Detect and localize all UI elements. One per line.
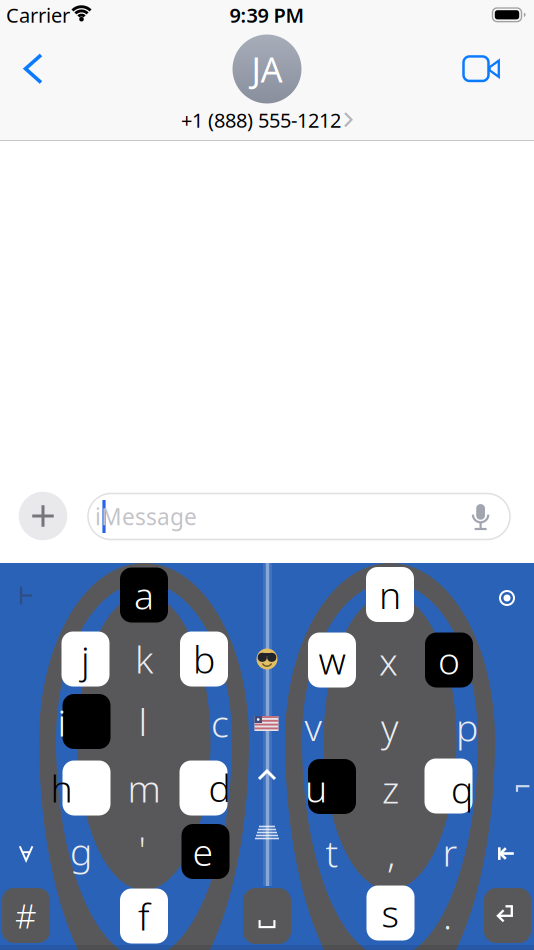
button[interactable]: l xyxy=(119,694,167,749)
staticText: i xyxy=(57,697,66,747)
staticText: . xyxy=(443,890,452,940)
button[interactable] xyxy=(243,888,291,944)
staticText: JA xyxy=(251,46,282,92)
button[interactable] xyxy=(88,493,510,539)
staticText: w xyxy=(318,635,345,685)
button[interactable]: . xyxy=(423,887,471,942)
staticText: iMessage xyxy=(95,501,197,531)
button[interactable] xyxy=(0,0,534,950)
staticText: u xyxy=(305,763,327,813)
button[interactable] xyxy=(0,0,534,950)
button[interactable]: c xyxy=(196,695,244,750)
button[interactable]: g xyxy=(57,823,105,878)
button[interactable]: h xyxy=(62,760,110,815)
button[interactable]: s xyxy=(366,885,414,940)
button[interactable]: q xyxy=(424,758,472,813)
staticText: g xyxy=(70,826,92,876)
button[interactable] xyxy=(0,0,534,950)
button[interactable]: b xyxy=(180,631,228,686)
button[interactable] xyxy=(255,768,279,782)
button[interactable] xyxy=(19,492,67,540)
button[interactable]: d xyxy=(179,760,227,815)
button[interactable] xyxy=(0,0,534,950)
button[interactable]: v xyxy=(289,699,337,754)
staticText: c xyxy=(211,698,229,748)
staticText: z xyxy=(382,764,399,814)
staticText: y xyxy=(381,702,399,752)
staticText: s xyxy=(381,888,399,938)
staticText: f xyxy=(138,891,150,941)
button[interactable] xyxy=(0,0,534,950)
button[interactable]: n xyxy=(366,567,414,622)
button[interactable]: x xyxy=(364,633,412,688)
button[interactable]: m xyxy=(120,760,168,815)
staticText: e xyxy=(192,827,213,876)
button[interactable] xyxy=(0,0,534,950)
staticText: h xyxy=(50,763,72,813)
staticText: k xyxy=(135,634,153,684)
staticText: ' xyxy=(138,824,145,874)
button[interactable]: z xyxy=(366,761,414,816)
staticText: v xyxy=(304,702,322,751)
button[interactable] xyxy=(0,0,534,950)
staticText: n xyxy=(379,570,401,619)
button[interactable]: p xyxy=(443,699,491,754)
button[interactable]: j xyxy=(61,631,109,686)
button[interactable]: f xyxy=(120,888,168,943)
button[interactable]: # xyxy=(2,888,50,943)
staticText: o xyxy=(438,635,460,685)
staticText: q xyxy=(451,764,473,814)
staticText: a xyxy=(134,570,154,620)
staticText: 9:39 PM xyxy=(229,2,304,28)
button[interactable]: o xyxy=(425,632,473,687)
staticText: # xyxy=(15,893,37,938)
staticText: x xyxy=(379,636,398,686)
button[interactable]: t xyxy=(308,825,356,880)
button[interactable]: k xyxy=(120,631,168,686)
staticText: d xyxy=(208,763,230,812)
staticText: , xyxy=(387,828,395,878)
button[interactable]: w xyxy=(308,632,356,687)
button[interactable] xyxy=(255,647,279,671)
staticText: r xyxy=(442,827,457,877)
button[interactable]: ' xyxy=(118,821,166,876)
button[interactable]: , xyxy=(367,825,415,880)
button[interactable]: u xyxy=(308,759,356,814)
staticText: j xyxy=(81,634,90,684)
staticText: p xyxy=(456,702,478,752)
staticText: Carrier xyxy=(6,2,70,28)
button[interactable] xyxy=(0,0,534,950)
button[interactable]: e xyxy=(181,824,229,879)
button[interactable] xyxy=(254,824,280,841)
button[interactable]: a xyxy=(120,567,168,622)
button[interactable] xyxy=(498,589,516,607)
staticText: t xyxy=(325,828,338,878)
button[interactable] xyxy=(254,715,278,731)
staticText: m xyxy=(127,763,160,813)
button[interactable]: i xyxy=(62,694,110,749)
staticText: l xyxy=(138,697,147,746)
button[interactable]: y xyxy=(366,699,414,754)
button[interactable]: +1 (888) 555-1212 xyxy=(181,107,353,133)
staticText: b xyxy=(193,634,215,684)
button[interactable]: JA xyxy=(232,34,301,103)
staticText: +1 (888) 555-1212 xyxy=(181,107,341,133)
button[interactable]: r xyxy=(426,824,474,879)
